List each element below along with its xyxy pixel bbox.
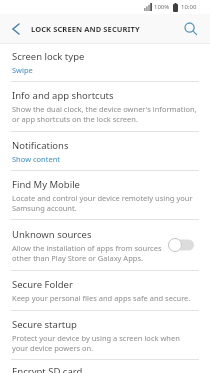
button[interactable]: Unknown sources xyxy=(0,220,210,270)
staticText: Protect your device by using a screen lo… xyxy=(12,333,180,353)
button[interactable] xyxy=(172,14,210,43)
staticText: Swipe xyxy=(12,65,33,75)
staticText: Keep your personal files and apps safe a… xyxy=(12,293,191,303)
staticText: Allow the installation of apps from sour… xyxy=(12,243,162,263)
button[interactable]: Secure startup xyxy=(0,311,210,359)
staticText: Screen lock type xyxy=(12,50,85,63)
staticText: Show content xyxy=(12,154,61,164)
button[interactable]: Notifications xyxy=(0,132,210,170)
staticText: Info and app shortcuts xyxy=(12,89,114,102)
staticText: Notifications xyxy=(12,139,69,152)
staticText: Find My Mobile xyxy=(12,178,80,191)
staticText: Secure Folder xyxy=(12,278,73,291)
staticText: Locate and control your device remotely … xyxy=(12,193,193,213)
button[interactable]: Info and app shortcuts xyxy=(0,82,210,131)
button[interactable]: Find My Mobile xyxy=(0,171,210,219)
button[interactable]: Screen lock type xyxy=(0,44,210,81)
staticText: 10:00 xyxy=(181,3,197,11)
button[interactable]: Secure Folder xyxy=(0,271,210,310)
staticText: Secure startup xyxy=(12,318,77,331)
staticText: Encrypt SD card xyxy=(12,365,83,373)
staticText: LOCK SCREEN AND SECURITY xyxy=(31,24,140,34)
staticText: 100% xyxy=(154,3,170,11)
staticText: Unknown sources xyxy=(12,228,92,241)
button[interactable] xyxy=(0,14,31,43)
button[interactable]: Encrypt SD card xyxy=(0,360,210,373)
staticText: Show the dual clock, the device owner's … xyxy=(12,104,197,124)
